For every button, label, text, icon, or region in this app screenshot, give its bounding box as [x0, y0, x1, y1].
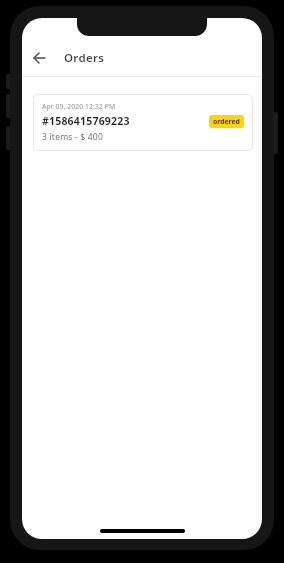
staticText: Apr 09, 2020 12:32 PM — [42, 102, 116, 111]
button[interactable]: Apr 09, 2020 12:32 PM — [33, 94, 253, 151]
staticText: 3 items - $ 400 — [42, 131, 103, 143]
staticText: Orders — [64, 50, 105, 66]
button[interactable] — [22, 44, 56, 72]
staticText: #1586415769223 — [42, 114, 130, 128]
staticText: ordered — [213, 117, 240, 126]
